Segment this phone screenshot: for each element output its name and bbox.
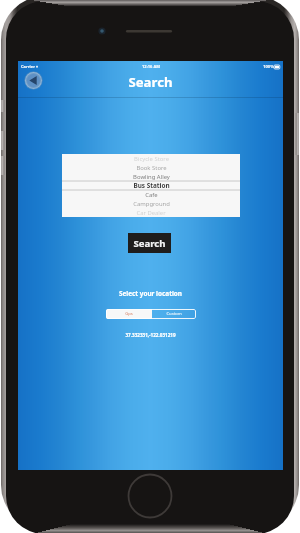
staticText: Book Store: [136, 164, 167, 172]
button[interactable]: Bowling Alley: [62, 172, 240, 181]
button[interactable]: Bicycle Store: [62, 154, 240, 163]
button[interactable]: Custom: [152, 309, 196, 319]
button[interactable]: Gps: [106, 309, 152, 319]
button[interactable]: Campground: [62, 199, 240, 208]
staticText: Cafe: [145, 191, 158, 199]
staticText: Carrier ▾: [21, 64, 38, 69]
staticText: 37.332331,-122.031219: [18, 332, 283, 338]
staticText: 100%: [263, 64, 274, 69]
button[interactable]: Back: [24, 71, 43, 90]
staticText: Campground: [133, 200, 170, 208]
staticText: Search: [133, 237, 166, 250]
button[interactable]: Car Dealer: [62, 208, 240, 217]
staticText: Car Dealer: [136, 209, 166, 217]
staticText: Custom: [166, 311, 182, 317]
staticText: Bus Station: [133, 181, 170, 190]
staticText: 12:16 AM: [142, 64, 160, 69]
staticText: Gps: [125, 311, 133, 317]
button[interactable]: Bus Station: [62, 181, 240, 190]
staticText: Search: [18, 73, 283, 91]
button[interactable]: Cafe: [62, 190, 240, 199]
button[interactable]: Book Store: [62, 163, 240, 172]
button[interactable]: Search: [128, 233, 171, 253]
staticText: Bowling Alley: [133, 173, 170, 181]
staticText: Bicycle Store: [134, 155, 169, 163]
staticText: Select your location: [18, 289, 283, 298]
